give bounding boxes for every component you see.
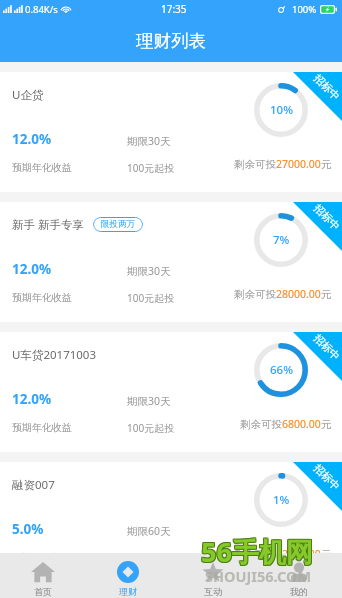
staticText: 融资007 (12, 477, 55, 493)
staticText: 12000.00 (276, 547, 321, 561)
staticText: 28000.00 (276, 287, 321, 301)
staticText: 限投两万 (101, 219, 135, 230)
staticText: U企贷 (12, 87, 44, 103)
staticText: 招标中 (311, 72, 342, 103)
staticText: 期限30天 (127, 134, 171, 148)
staticText: 56手机网 (202, 534, 314, 571)
staticText: 12.0% (12, 130, 52, 148)
staticText: 56手机网 (200, 533, 312, 570)
staticText: 0.84K/s (25, 3, 58, 16)
staticText: 剩余可投 (240, 418, 282, 431)
staticText: 1% (273, 492, 290, 508)
staticText: 互动 (204, 586, 222, 597)
staticText: 元 (321, 158, 332, 171)
staticText: 100元起投 (127, 421, 175, 435)
staticText: 首页 (34, 586, 52, 597)
staticText: 12.0% (12, 260, 52, 278)
staticText: 元 (321, 288, 332, 301)
staticText: 56手机网 (201, 534, 313, 571)
staticText: 期限30天 (127, 394, 171, 408)
staticText: 56手机网 (201, 533, 313, 570)
staticText: 56手机网 (201, 532, 313, 569)
staticText: 7% (273, 232, 290, 248)
staticText: 6800.00 (282, 417, 321, 431)
staticText: SHOUJI56.COM (205, 566, 312, 586)
staticText: 剩余可投 (234, 288, 276, 301)
staticText: 预期年化收益 (12, 421, 72, 434)
staticText: 新手 新手专享 (12, 217, 84, 233)
staticText: 元 (321, 548, 332, 561)
staticText: 56手机网 (202, 533, 314, 570)
button[interactable]: 融资007 (0, 462, 342, 553)
staticText: 期限30天 (127, 264, 171, 278)
staticText: 5.0% (12, 520, 44, 538)
button[interactable]: 新手 新手专享 (0, 202, 342, 322)
staticText: 56手机网 (202, 532, 314, 569)
staticText: 17:35 (161, 2, 187, 16)
staticText: 100元起投 (127, 291, 175, 305)
staticText: 我的 (290, 586, 308, 597)
staticText: 理财列表 (136, 30, 206, 52)
button[interactable]: 首页 (0, 553, 85, 598)
staticText: 预期年化收益 (12, 291, 72, 304)
staticText: 10% (270, 102, 293, 118)
staticText: 期限60天 (127, 524, 171, 538)
staticText: 理财 (119, 586, 137, 597)
staticText: 招标中 (311, 462, 342, 493)
staticText: 剩余可投 (234, 158, 276, 171)
button[interactable]: 我的 (256, 553, 342, 598)
staticText: 56手机网 (200, 532, 312, 569)
staticText: 预期年化收益 (12, 161, 72, 174)
staticText: 剩余可投 (234, 548, 276, 561)
staticText: 100元起投 (127, 161, 175, 175)
staticText: 100% (292, 3, 317, 16)
button[interactable]: 理财 (85, 553, 170, 598)
staticText: 27000.00 (276, 157, 321, 171)
staticText: 招标中 (311, 202, 342, 233)
staticText: 招标中 (311, 332, 342, 363)
staticText: 元 (321, 418, 332, 431)
button[interactable]: U车贷20171003 (0, 332, 342, 452)
staticText: U车贷20171003 (12, 347, 97, 363)
staticText: 56手机网 (200, 534, 312, 571)
staticText: 66% (270, 362, 293, 378)
button[interactable]: U企贷 (0, 72, 342, 192)
staticText: 12.0% (12, 390, 52, 408)
button[interactable]: 互动 (170, 553, 256, 598)
